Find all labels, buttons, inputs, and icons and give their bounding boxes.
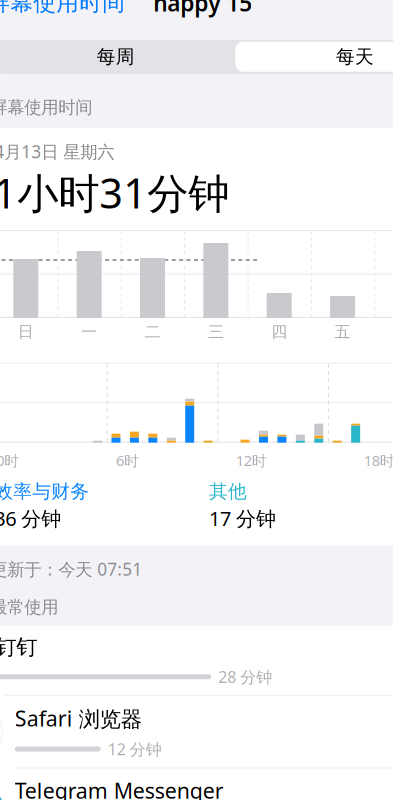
- button[interactable]: Safari 浏览器: [0, 696, 393, 768]
- staticText: 四: [271, 322, 287, 342]
- staticText: 18时: [364, 451, 393, 470]
- staticText: 28 分钟: [218, 666, 272, 687]
- staticText: 12时: [236, 451, 267, 470]
- button[interactable]: 每周: [0, 42, 235, 72]
- staticText: 屏幕使用时间: [0, 0, 125, 17]
- staticText: 其他: [209, 480, 247, 503]
- staticText: 五: [335, 322, 351, 342]
- staticText: 36 分钟: [0, 505, 61, 532]
- button[interactable]: 屏幕使用时间: [0, 0, 135, 25]
- button[interactable]: 钉钉: [0, 626, 393, 696]
- staticText: 12 分钟: [108, 738, 162, 760]
- staticText: 日: [18, 322, 34, 342]
- staticText: 三: [208, 322, 224, 342]
- staticText: 每天: [336, 45, 374, 68]
- staticText: 0时: [0, 451, 19, 470]
- staticText: 6时: [116, 451, 139, 470]
- staticText: 更新于：今天 07:51: [0, 558, 142, 581]
- staticText: 每周: [97, 45, 135, 68]
- staticText: 效率与财务: [0, 480, 89, 503]
- staticText: Safari 浏览器: [15, 704, 142, 732]
- staticText: 1小时31分钟: [0, 165, 229, 220]
- staticText: 17 分钟: [209, 505, 276, 532]
- staticText: 钉钉: [0, 634, 37, 660]
- staticText: 最常使用: [0, 597, 58, 618]
- button[interactable]: 每天: [235, 42, 393, 72]
- staticText: 4月13日 星期六: [0, 140, 114, 163]
- staticText: 一: [81, 322, 97, 342]
- staticText: 二: [144, 322, 160, 342]
- button[interactable]: Telegram Messenger: [0, 768, 393, 800]
- staticText: happy 15: [153, 0, 252, 18]
- staticText: Telegram Messenger: [15, 776, 224, 800]
- staticText: 屏幕使用时间: [0, 97, 92, 118]
